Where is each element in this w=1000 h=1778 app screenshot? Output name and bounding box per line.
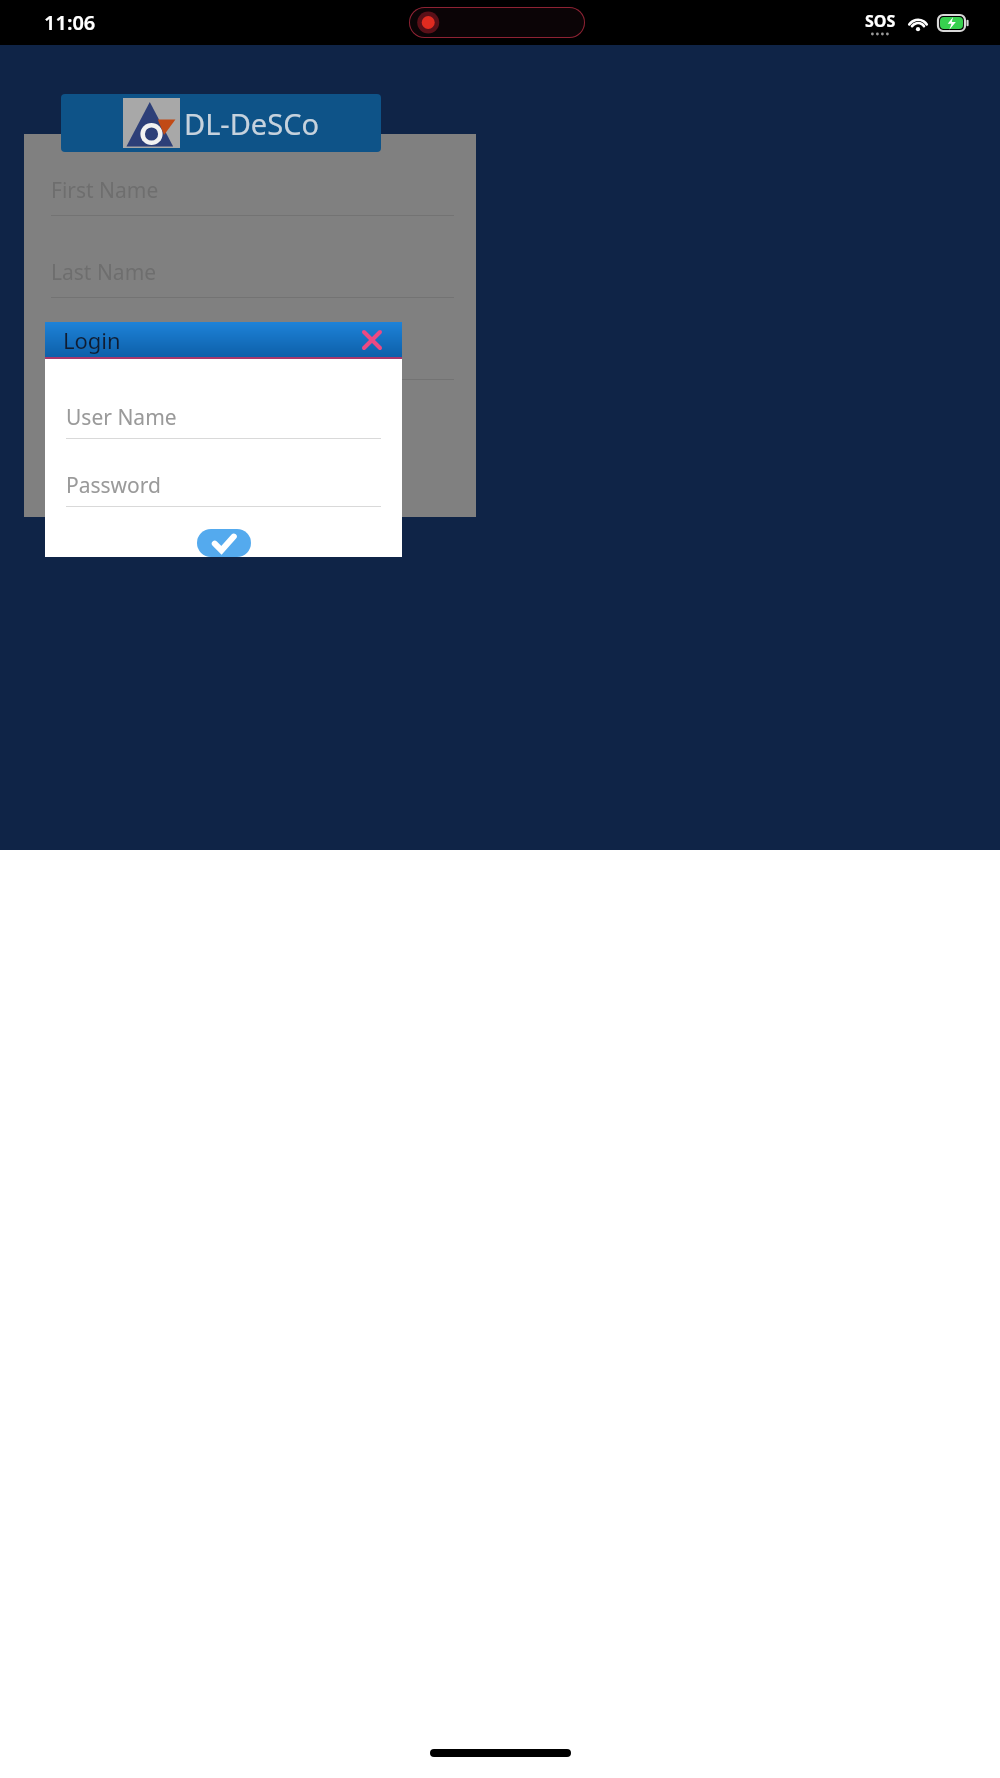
staticText: DL-DeSCo [184, 104, 320, 143]
button[interactable]: DL-DeSCo [61, 94, 381, 152]
staticText: User Name [66, 403, 177, 432]
button[interactable] [51, 334, 454, 380]
button[interactable]: Submit login [197, 529, 251, 557]
staticText: Last Name [51, 258, 157, 287]
button[interactable]: Close [356, 324, 388, 356]
staticText: SOS [865, 10, 896, 32]
staticText: 11:06 [44, 9, 96, 36]
button[interactable]: Password [66, 469, 381, 507]
button[interactable]: Last Name [51, 252, 454, 298]
staticText: Password [66, 471, 161, 500]
button[interactable]: Login [45, 322, 402, 357]
staticText: First Name [51, 176, 159, 205]
button[interactable]: User Name [66, 401, 381, 439]
staticText: Login [63, 325, 121, 355]
button[interactable]: First Name [51, 170, 454, 216]
